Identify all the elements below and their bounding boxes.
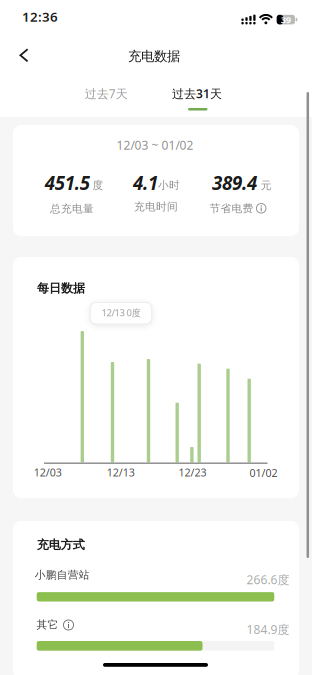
staticText: 充电方式 bbox=[37, 537, 85, 552]
staticText: 其它 bbox=[36, 618, 58, 631]
staticText: 39 bbox=[281, 13, 291, 26]
staticText: 节省电费 bbox=[209, 202, 253, 215]
button[interactable]: 过去31天 bbox=[157, 77, 237, 111]
staticText: 12/23 bbox=[179, 465, 207, 479]
staticText: 总充电量 bbox=[50, 202, 94, 215]
staticText: 小鹏自营站 bbox=[35, 568, 90, 581]
button[interactable]: 过去7天 bbox=[68, 78, 144, 108]
button[interactable]: About saved cost bbox=[252, 199, 270, 217]
staticText: 12:36 bbox=[22, 8, 58, 25]
staticText: 389.4 bbox=[212, 170, 257, 195]
staticText: 12/03 bbox=[34, 465, 62, 479]
staticText: 过去31天 bbox=[172, 85, 222, 101]
staticText: 元 bbox=[261, 179, 272, 192]
staticText: 每日数据 bbox=[37, 281, 85, 295]
staticText: 12/03 ~ 01/02 bbox=[116, 137, 193, 153]
staticText: 12/13 0度 bbox=[101, 306, 140, 319]
button[interactable]: Back bbox=[9, 40, 39, 70]
button[interactable]: About other stations bbox=[59, 616, 77, 634]
staticText: 184.9度 bbox=[246, 621, 289, 637]
staticText: 451.5 bbox=[45, 170, 90, 195]
staticText: 过去7天 bbox=[85, 85, 128, 101]
staticText: 12/13 bbox=[107, 465, 135, 479]
staticText: 充电时间 bbox=[134, 200, 178, 213]
staticText: 266.6度 bbox=[246, 572, 289, 587]
staticText: 度 bbox=[92, 179, 103, 192]
staticText: 小时 bbox=[158, 179, 180, 192]
staticText: 01/02 bbox=[249, 466, 277, 480]
staticText: 充电数据 bbox=[128, 48, 180, 65]
staticText: 4.1 bbox=[133, 170, 158, 195]
